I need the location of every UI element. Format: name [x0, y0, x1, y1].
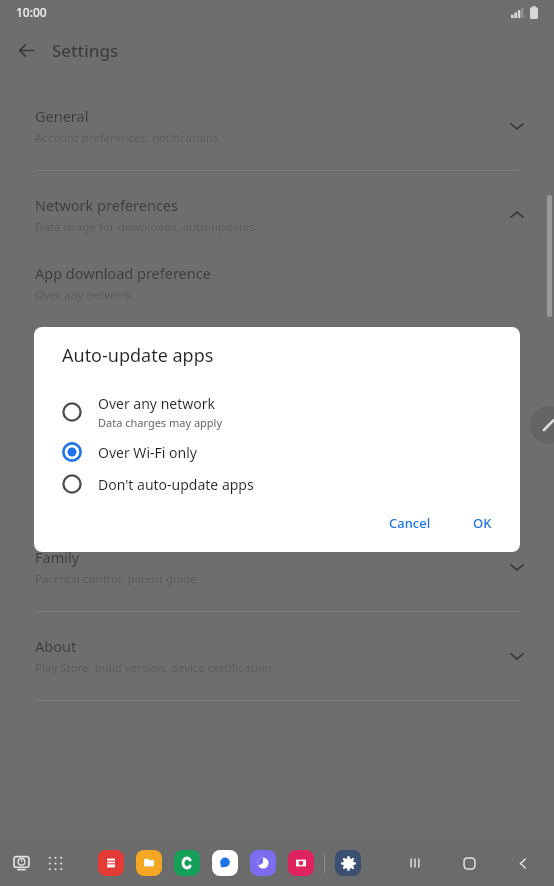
staticText: Over any network	[35, 287, 132, 303]
button[interactable]: Internet	[250, 850, 276, 876]
staticText: App download preference	[35, 263, 211, 283]
staticText: Data usage for downloads, auto-updates	[35, 219, 255, 235]
button[interactable]: Recents	[396, 844, 434, 882]
button[interactable]: Network preferences	[0, 181, 554, 249]
button[interactable]: Messages	[212, 850, 238, 876]
staticText: Don't auto-update apps	[98, 475, 254, 494]
staticText: Network preferences	[35, 195, 178, 215]
button[interactable]: General	[0, 92, 554, 160]
staticText: General	[35, 106, 89, 126]
button[interactable]: Apps	[40, 848, 70, 878]
button[interactable]: Over any network	[34, 388, 520, 436]
button[interactable]: Recent apps	[6, 848, 36, 878]
staticText: Family	[35, 547, 80, 567]
button[interactable]: Phone	[174, 850, 200, 876]
button[interactable]: Settings	[335, 850, 361, 876]
button[interactable]: Auto-update apps	[0, 313, 554, 377]
staticText: Play Store, build version, device certif…	[35, 660, 272, 676]
button[interactable]: Cancel	[379, 508, 441, 538]
staticText: Cancel	[389, 514, 431, 532]
button[interactable]: My Files	[136, 850, 162, 876]
staticText: Data charges may apply	[98, 415, 223, 430]
staticText: Settings	[52, 39, 119, 62]
button[interactable]: Don't auto-update apps	[34, 468, 520, 500]
button[interactable]: App download preference	[0, 249, 554, 313]
staticText: Over any network	[98, 394, 215, 413]
button[interactable]: About	[0, 622, 554, 690]
button[interactable]: Edit	[530, 406, 554, 444]
staticText: About	[35, 636, 77, 656]
staticText: Auto-update apps over Wi-Fi only	[35, 351, 214, 367]
button[interactable]: Keep	[98, 850, 124, 876]
staticText: Parental control, parent guide	[35, 571, 197, 587]
staticText: Auto-update apps	[35, 327, 157, 347]
button[interactable]: Back	[0, 24, 52, 76]
button[interactable]: OK	[463, 508, 502, 538]
button[interactable]: Camera	[288, 850, 314, 876]
button[interactable]: Over Wi-Fi only	[34, 436, 520, 468]
staticText: Account preferences, notifications	[35, 130, 219, 146]
staticText: OK	[473, 514, 492, 532]
staticText: Over Wi-Fi only	[98, 443, 197, 462]
staticText: 10:00	[16, 4, 47, 20]
button[interactable]: Back	[504, 844, 542, 882]
staticText: Auto-update apps	[62, 343, 214, 368]
button[interactable]: Home	[450, 844, 488, 882]
button[interactable]: Family	[0, 547, 554, 601]
